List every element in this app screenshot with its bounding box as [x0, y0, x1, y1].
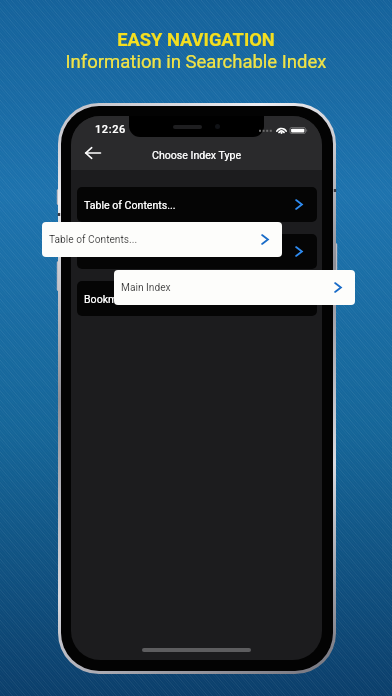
staticText: Information in Searchable Index: [0, 51, 392, 73]
staticText: Main Index: [121, 282, 171, 294]
staticText: Table of Contents...: [49, 234, 138, 246]
button[interactable]: Index: [77, 234, 317, 269]
button[interactable]: Back: [80, 140, 106, 166]
staticText: EASY NAVIGATION: [0, 29, 392, 50]
staticText: Table of Contents...: [84, 199, 176, 211]
staticText: 12:26: [95, 123, 126, 136]
button[interactable]: Bookmarks: [77, 281, 317, 316]
staticText: Bookmarks: [84, 293, 138, 305]
button[interactable]: Table of Contents...: [77, 187, 317, 222]
button[interactable]: Main Index: [114, 270, 355, 305]
staticText: Index: [84, 246, 110, 258]
button[interactable]: Table of Contents...: [42, 222, 282, 257]
staticText: Choose Index Type: [152, 149, 242, 161]
